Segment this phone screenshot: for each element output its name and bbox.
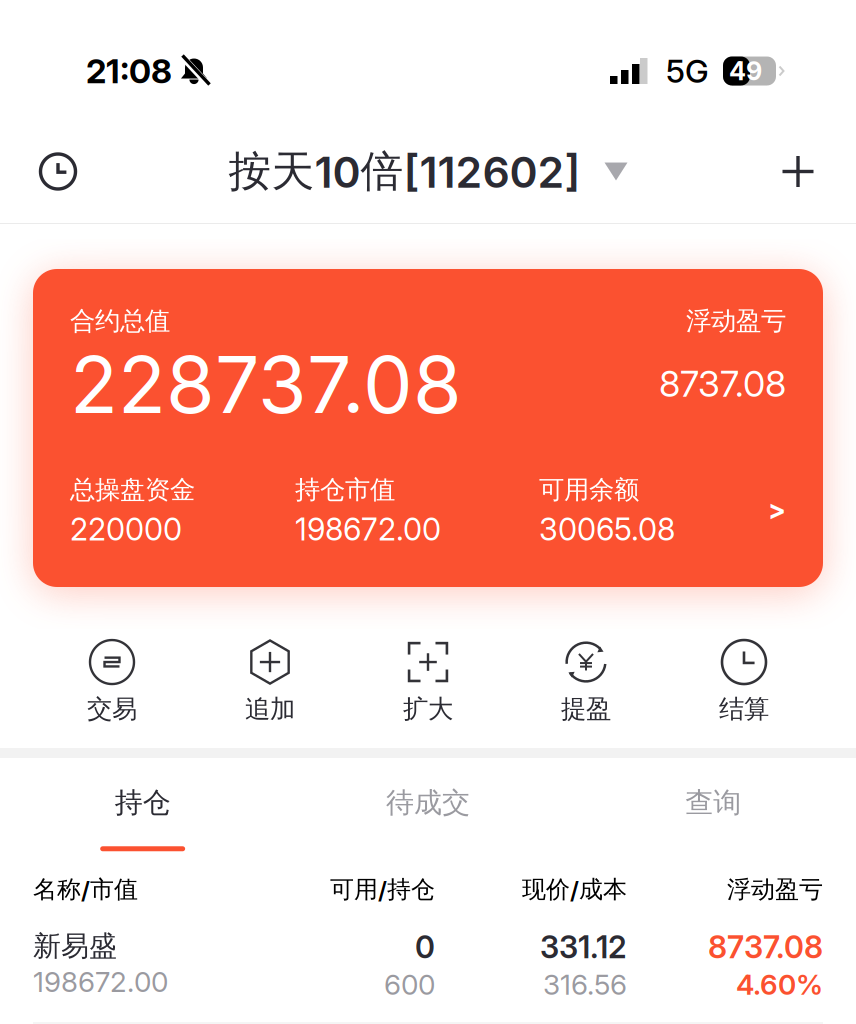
staticText: 0 bbox=[415, 928, 435, 966]
staticText: 8737.08 bbox=[659, 362, 786, 405]
staticText: 331.12 bbox=[540, 928, 627, 966]
staticText: 名称/市值 bbox=[33, 874, 138, 904]
button[interactable]: 待成交 bbox=[285, 785, 571, 851]
staticText: 合约总值 bbox=[70, 305, 170, 337]
staticText: 浮动盈亏 bbox=[727, 874, 823, 904]
staticText: 查询 bbox=[685, 785, 741, 820]
staticText: 21:08 bbox=[86, 51, 172, 91]
staticText: 可用余额 bbox=[539, 474, 639, 506]
button[interactable]: 合约总值 bbox=[33, 269, 823, 587]
staticText: 4.60% bbox=[736, 968, 823, 1001]
staticText: 总操盘资金 bbox=[70, 474, 195, 506]
staticText: 220000 bbox=[70, 511, 182, 548]
staticText: 按天10倍[112602] bbox=[228, 145, 580, 198]
button[interactable]: 追加 bbox=[191, 643, 349, 722]
button[interactable]: 结算 bbox=[665, 643, 823, 722]
staticText: 600 bbox=[384, 968, 435, 1001]
staticText: 浮动盈亏 bbox=[686, 305, 786, 337]
staticText: 8737.08 bbox=[708, 928, 823, 966]
staticText: 49 bbox=[729, 56, 762, 86]
button[interactable]: 持仓 bbox=[0, 785, 285, 851]
button[interactable]: 查询 bbox=[571, 785, 856, 851]
button[interactable]: 扩大 bbox=[349, 643, 507, 722]
staticText: 结算 bbox=[719, 693, 769, 725]
button[interactable]: Add bbox=[760, 133, 836, 209]
staticText: 30065.08 bbox=[539, 511, 675, 548]
staticText: 持仓市值 bbox=[295, 474, 395, 506]
staticText: 持仓 bbox=[115, 785, 171, 820]
staticText: 198672.00 bbox=[33, 965, 168, 999]
staticText: 198672.00 bbox=[295, 511, 441, 548]
staticText: 316.56 bbox=[543, 968, 627, 1001]
button[interactable]: 提盈 bbox=[507, 643, 665, 722]
staticText: 可用/持仓 bbox=[330, 874, 435, 904]
staticText: 扩大 bbox=[403, 693, 453, 725]
button[interactable]: 新易盛 bbox=[0, 904, 856, 1001]
button[interactable]: 交易 bbox=[33, 643, 191, 722]
staticText: 现价/成本 bbox=[522, 874, 627, 904]
staticText: 228737.08 bbox=[70, 337, 462, 432]
staticText: 待成交 bbox=[386, 785, 470, 820]
staticText: 提盈 bbox=[561, 693, 611, 725]
staticText: > bbox=[768, 494, 786, 526]
button[interactable]: 按天10倍[112602] bbox=[228, 133, 627, 209]
staticText: 5G bbox=[666, 52, 709, 90]
staticText: 交易 bbox=[87, 693, 137, 725]
staticText: 追加 bbox=[245, 693, 295, 725]
staticText: 新易盛 bbox=[33, 928, 117, 964]
button[interactable]: History bbox=[20, 133, 96, 209]
